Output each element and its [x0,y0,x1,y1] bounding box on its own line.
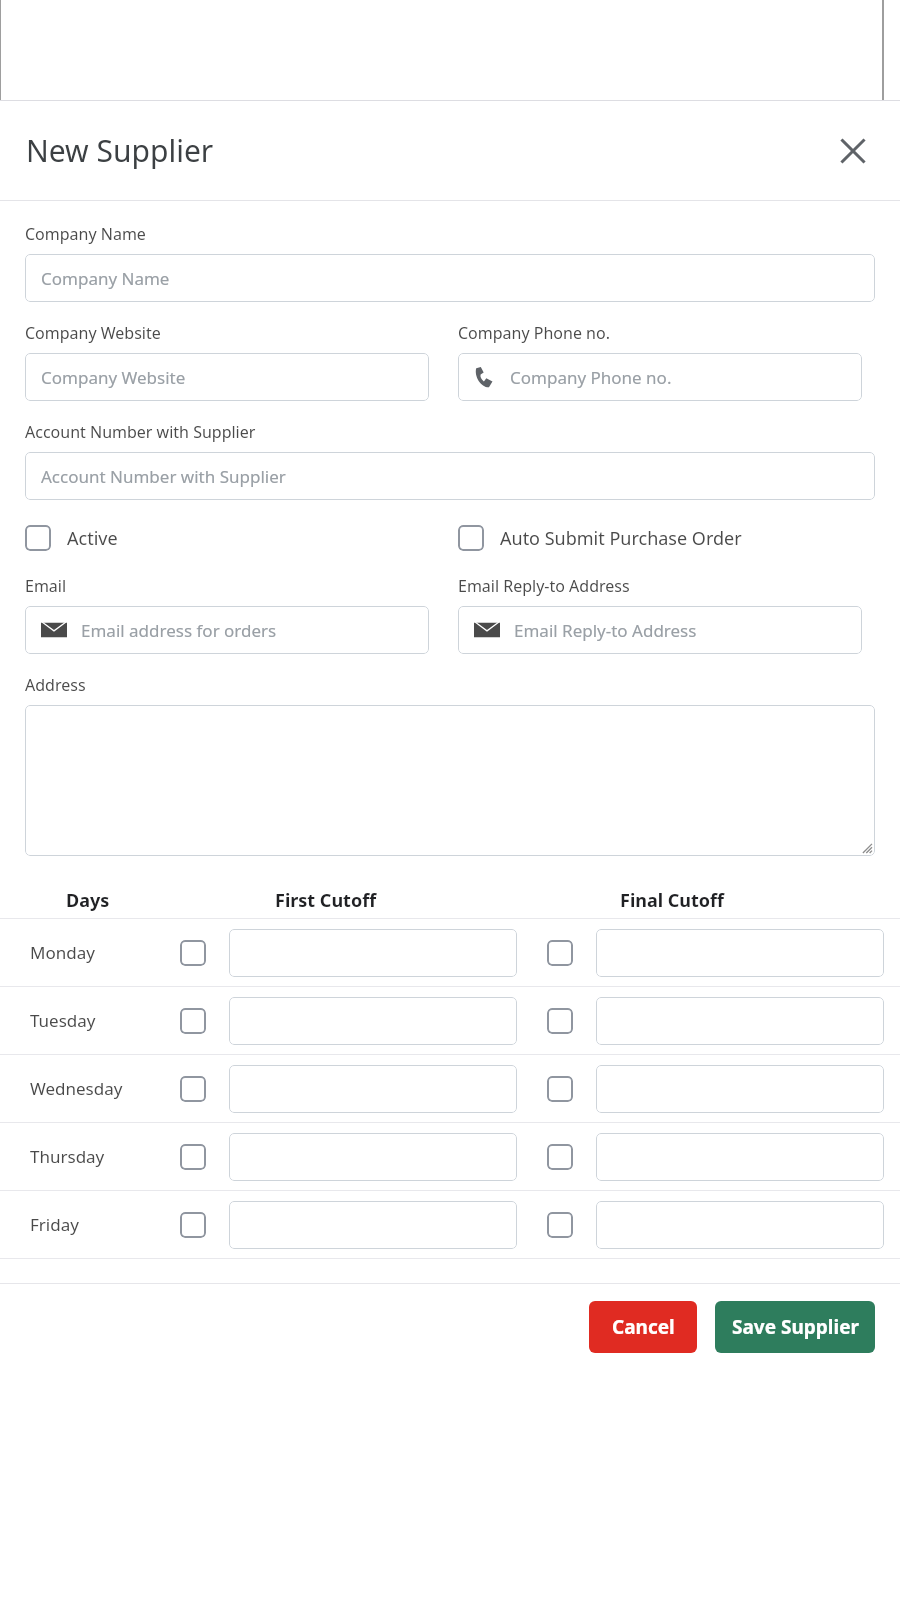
staticText: Company Website [41,366,186,389]
staticText: Friday [30,1213,79,1236]
staticText: Days [66,888,110,913]
button[interactable]: Tuesday final cutoff [547,1008,573,1034]
button[interactable]: Thursday first cutoff time [229,1133,517,1181]
button[interactable]: Email Reply-to Address [458,606,862,654]
staticText: First Cutoff [275,888,377,913]
staticText: Thursday [30,1145,105,1168]
button[interactable]: Company Phone number [458,353,862,401]
button[interactable]: Thursday final cutoff [547,1144,573,1170]
button[interactable]: Email address for orders [25,606,429,654]
staticText: Wednesday [30,1077,123,1100]
button[interactable]: Active [25,525,429,551]
button[interactable]: Company Name [25,254,875,302]
button[interactable]: Auto Submit Purchase Order [458,525,862,551]
staticText: Auto Submit Purchase Order [500,526,742,551]
button[interactable]: Monday first cutoff [180,940,206,966]
staticText: Cancel [612,1314,675,1340]
button[interactable]: Friday final cutoff [547,1212,573,1238]
staticText: Email Reply-to Address [514,619,697,642]
button[interactable]: Tuesday final cutoff time [596,997,884,1045]
staticText: Company Name [41,267,170,290]
button[interactable]: Account Number with Supplier [25,452,875,500]
staticText: Company Phone no. [510,366,672,389]
button[interactable]: Wednesday final cutoff time [596,1065,884,1113]
button[interactable]: Friday first cutoff [180,1212,206,1238]
button[interactable]: Company Website [25,353,429,401]
staticText: Tuesday [30,1009,96,1032]
staticText: Address [25,674,86,696]
button[interactable]: Tuesday first cutoff time [229,997,517,1045]
button[interactable]: Tuesday first cutoff [180,1008,206,1034]
staticText: Company Phone no. [458,322,610,344]
button[interactable]: Address [25,705,875,856]
staticText: Final Cutoff [620,888,725,913]
staticText: Active [67,526,118,551]
staticText: New Supplier [26,130,214,171]
staticText: Company Website [25,322,161,344]
button[interactable]: Monday final cutoff [547,940,573,966]
button[interactable]: Monday final cutoff time [596,929,884,977]
button[interactable]: Wednesday first cutoff time [229,1065,517,1113]
button[interactable]: Friday first cutoff time [229,1201,517,1249]
button[interactable]: Friday final cutoff time [596,1201,884,1249]
staticText: Monday [30,941,95,964]
staticText: Email address for orders [81,619,277,642]
staticText: Account Number with Supplier [25,421,256,443]
button[interactable]: Save Supplier [715,1301,875,1353]
staticText: Email Reply-to Address [458,575,630,597]
button[interactable]: Thursday first cutoff [180,1144,206,1170]
staticText: Email [25,575,67,597]
button[interactable]: Active [25,525,51,551]
staticText: Account Number with Supplier [41,465,286,488]
button[interactable]: Auto Submit Purchase Order [458,525,484,551]
button[interactable]: Thursday final cutoff time [596,1133,884,1181]
button[interactable]: Wednesday final cutoff [547,1076,573,1102]
button[interactable]: Cancel [589,1301,697,1353]
button[interactable]: Close [832,130,874,172]
button[interactable]: Wednesday first cutoff [180,1076,206,1102]
staticText: Save Supplier [732,1314,859,1340]
button[interactable]: Monday first cutoff time [229,929,517,977]
staticText: Company Name [25,223,146,245]
